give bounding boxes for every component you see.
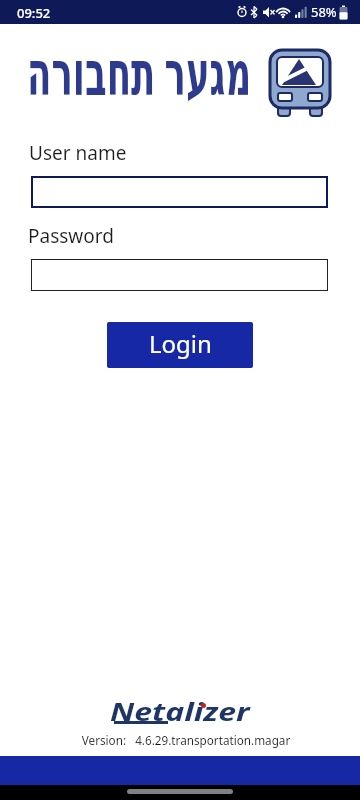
staticText: Login	[149, 327, 212, 360]
button[interactable]	[31, 259, 328, 291]
staticText: Version: 4.6.29.transportation.magar	[24, 731, 348, 749]
staticText: 09:52	[17, 4, 51, 22]
staticText: User name	[29, 140, 127, 166]
staticText: 58%	[311, 3, 337, 21]
button[interactable]: Login	[107, 322, 253, 368]
staticText: מגער תחבורה	[27, 29, 233, 113]
staticText: Netalizer	[110, 694, 250, 728]
staticText: Password	[28, 223, 114, 249]
button[interactable]	[31, 176, 328, 208]
